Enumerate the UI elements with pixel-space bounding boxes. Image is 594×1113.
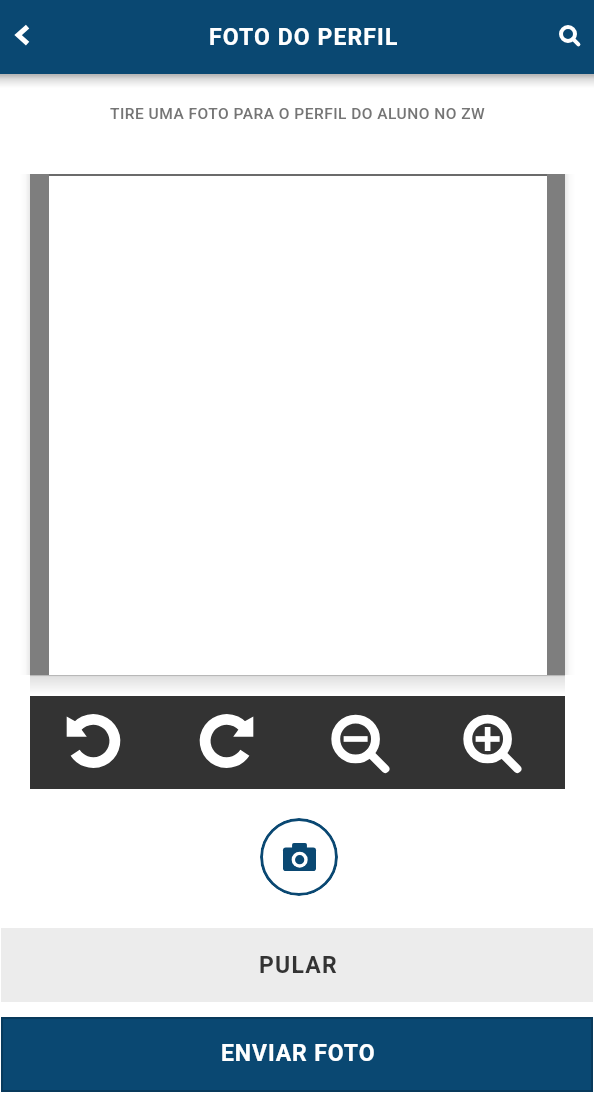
button[interactable]: Back bbox=[0, 9, 56, 65]
staticText: TIRE UMA FOTO PARA O PERFIL DO ALUNO NO … bbox=[110, 105, 486, 123]
button[interactable]: Zoom out bbox=[318, 702, 398, 782]
staticText: PULAR bbox=[259, 952, 338, 979]
button[interactable]: Rotate left bbox=[50, 701, 130, 781]
staticText: FOTO DO PERFIL bbox=[209, 24, 399, 51]
staticText: ENVIAR FOTO bbox=[221, 1040, 376, 1067]
button[interactable]: Rotate right bbox=[190, 701, 270, 781]
button[interactable]: ENVIAR FOTO bbox=[1, 1017, 593, 1092]
button[interactable]: Search bbox=[538, 9, 594, 65]
button[interactable]: Zoom in bbox=[450, 702, 530, 782]
button[interactable]: PULAR bbox=[1, 928, 593, 1002]
button[interactable]: Take photo bbox=[260, 818, 338, 896]
